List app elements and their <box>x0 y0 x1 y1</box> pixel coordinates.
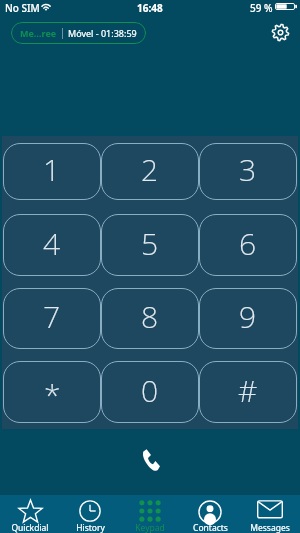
button[interactable]: * <box>3 361 101 423</box>
button[interactable]: Call <box>130 441 170 481</box>
button[interactable]: Keypad <box>120 495 180 533</box>
button[interactable]: Settings <box>268 20 292 44</box>
staticText: Contacts <box>193 522 228 533</box>
button[interactable]: 7 <box>3 288 101 349</box>
staticText: Messages <box>250 522 290 533</box>
button[interactable]: 8 <box>101 288 199 349</box>
staticText: Móvel - 01:38:59 <box>68 27 137 39</box>
staticText: Keypad <box>135 522 165 533</box>
staticText: Quickdial <box>11 522 49 533</box>
staticText: History <box>76 522 105 533</box>
button[interactable]: 9 <box>199 288 297 349</box>
button[interactable]: # <box>199 361 297 423</box>
staticText: 5 <box>141 223 159 264</box>
button[interactable]: Quickdial <box>0 495 60 533</box>
staticText: 7 <box>43 296 61 337</box>
staticText: 0 <box>141 370 159 411</box>
staticText: 6 <box>239 223 257 264</box>
button[interactable]: 4 <box>3 214 101 276</box>
staticText: # <box>238 370 258 411</box>
staticText: 3 <box>239 149 257 190</box>
staticText: 16:48 <box>137 1 163 15</box>
staticText: 1 <box>43 149 61 190</box>
staticText: 4 <box>43 223 61 264</box>
staticText: Me…ree <box>20 27 57 39</box>
button[interactable]: 5 <box>101 214 199 276</box>
button[interactable]: History <box>60 495 120 533</box>
button[interactable]: 3 <box>199 143 297 200</box>
staticText: 59 % <box>250 1 273 15</box>
button[interactable]: Me…ree <box>11 22 146 44</box>
button[interactable]: 6 <box>199 214 297 276</box>
button[interactable]: 2 <box>101 143 199 200</box>
staticText: 9 <box>239 296 257 337</box>
staticText: 2 <box>141 149 159 190</box>
button[interactable]: Messages <box>240 495 300 533</box>
button[interactable]: 0 <box>101 361 199 423</box>
button[interactable]: 1 <box>3 143 101 200</box>
staticText: 8 <box>141 296 159 337</box>
button[interactable]: Contacts <box>180 495 240 533</box>
staticText: * <box>44 374 61 415</box>
staticText: No SIM <box>5 1 40 15</box>
